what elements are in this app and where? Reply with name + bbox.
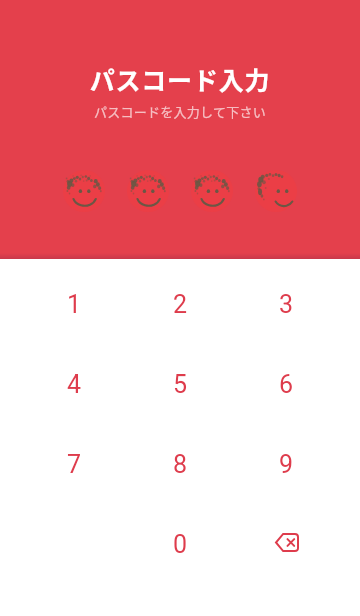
staticText: 2	[173, 290, 188, 319]
button[interactable]: Backspace	[233, 504, 339, 584]
staticText: 1	[67, 290, 82, 319]
staticText: パスコード入力	[0, 61, 360, 97]
staticText: 5	[173, 370, 188, 399]
staticText: 8	[173, 450, 188, 479]
staticText: 7	[67, 450, 82, 479]
button[interactable]: 6	[233, 344, 339, 424]
button[interactable]: 8	[127, 424, 233, 504]
other: Backspace	[275, 533, 299, 552]
button[interactable]: 7	[21, 424, 127, 504]
button[interactable]: 0	[127, 504, 233, 584]
button[interactable]: 4	[21, 344, 127, 424]
staticText: 3	[279, 290, 294, 319]
staticText: 4	[67, 370, 82, 399]
staticText: 6	[279, 370, 294, 399]
button[interactable]: 3	[233, 264, 339, 344]
staticText: 9	[279, 450, 294, 479]
staticText: パスコードを入力して下さい	[0, 102, 360, 121]
button[interactable]: 5	[127, 344, 233, 424]
button[interactable]: 1	[21, 264, 127, 344]
staticText: 0	[173, 530, 188, 559]
button[interactable]: 9	[233, 424, 339, 504]
button[interactable]: 2	[127, 264, 233, 344]
